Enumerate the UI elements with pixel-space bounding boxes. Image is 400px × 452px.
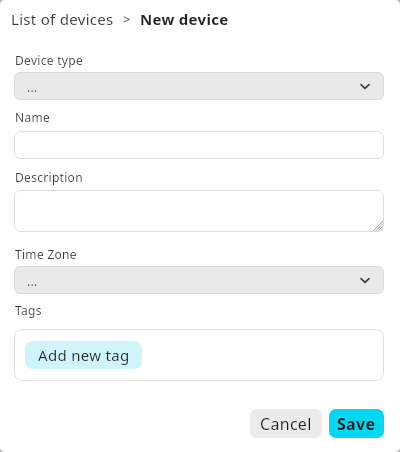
staticText: List of devices bbox=[11, 9, 114, 29]
button[interactable]: Add new tag bbox=[25, 341, 142, 369]
staticText: Add new tag bbox=[38, 345, 130, 365]
staticText: Cancel bbox=[260, 413, 312, 435]
staticText: Description bbox=[15, 169, 83, 185]
staticText: > bbox=[123, 10, 131, 28]
button[interactable]: Save bbox=[329, 409, 384, 438]
staticText: Save bbox=[337, 413, 376, 435]
staticText: Name bbox=[15, 109, 51, 125]
staticText: Tags bbox=[15, 302, 42, 318]
button[interactable] bbox=[14, 190, 384, 232]
button[interactable]: ... bbox=[14, 266, 384, 294]
staticText: New device bbox=[140, 9, 229, 29]
staticText: Time Zone bbox=[15, 246, 77, 262]
button[interactable]: Cancel bbox=[250, 409, 322, 438]
button[interactable]: List of devices bbox=[11, 9, 229, 29]
button[interactable]: ... bbox=[14, 72, 384, 100]
staticText: Device type bbox=[15, 52, 84, 68]
staticText: ... bbox=[27, 273, 38, 289]
staticText: ... bbox=[27, 79, 38, 95]
button[interactable] bbox=[14, 131, 384, 159]
